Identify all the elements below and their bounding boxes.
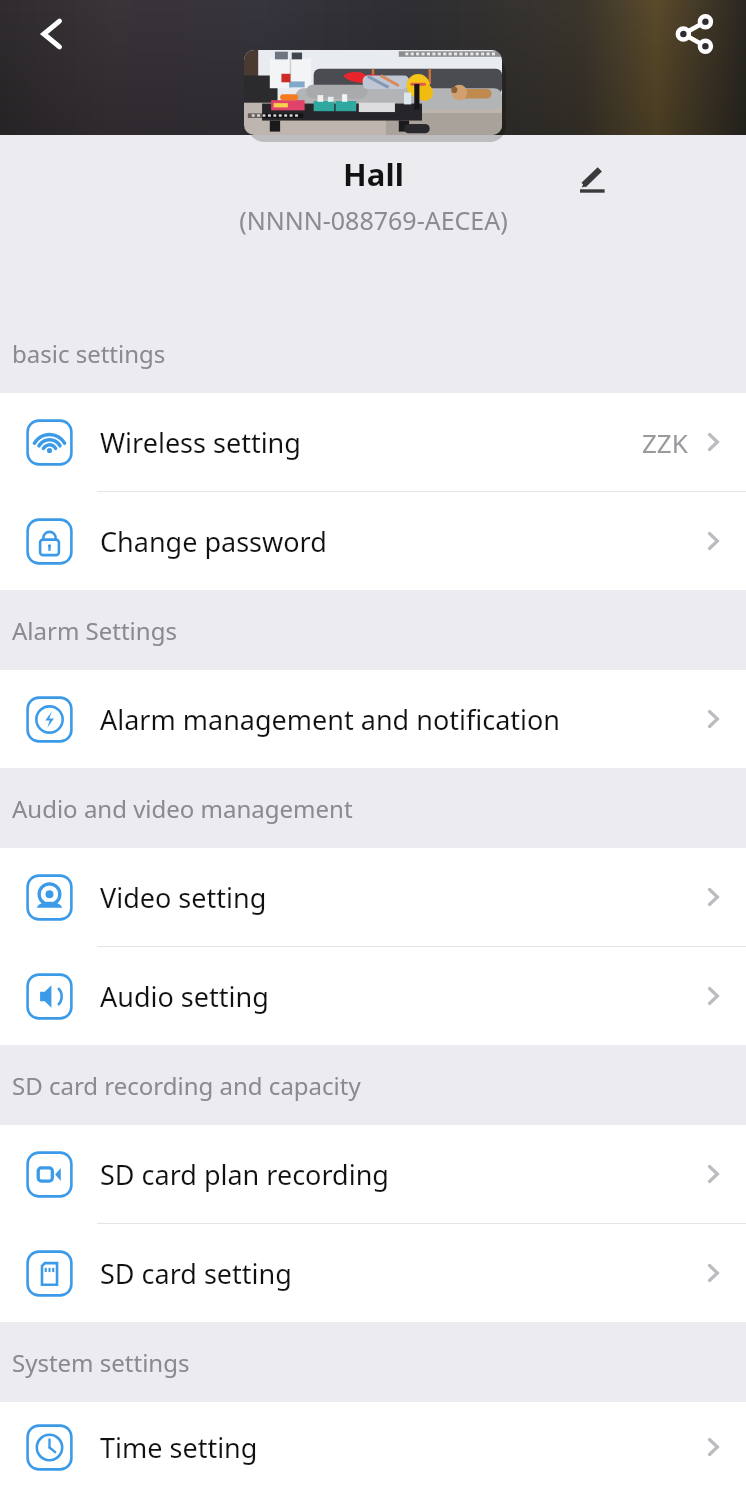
button[interactable]: Edit name — [566, 153, 618, 205]
staticText: SD card recording and capacity — [12, 1069, 361, 1102]
staticText: basic settings — [12, 337, 166, 370]
staticText: (NNNN-088769-AECEA) — [239, 203, 508, 237]
staticText: SD card plan recording — [100, 1156, 389, 1193]
button[interactable]: Time setting — [0, 1402, 746, 1492]
button[interactable]: Alarm management and notification — [0, 670, 746, 768]
staticText: Alarm management and notification — [100, 701, 561, 738]
button[interactable]: Share — [660, 0, 728, 68]
staticText: Change password — [100, 523, 327, 560]
staticText: ZZK — [642, 425, 688, 460]
button[interactable]: Audio setting — [0, 947, 746, 1045]
button[interactable]: Back — [18, 0, 86, 68]
staticText: Hall — [343, 153, 404, 195]
staticText: Audio setting — [100, 978, 269, 1015]
staticText: System settings — [12, 1346, 190, 1379]
staticText: Time setting — [100, 1429, 258, 1466]
staticText: SD card setting — [100, 1255, 292, 1292]
button[interactable]: Video setting — [0, 848, 746, 947]
staticText: Wireless setting — [100, 424, 301, 461]
button[interactable]: SD card setting — [0, 1224, 746, 1322]
button[interactable]: Wireless setting — [0, 393, 746, 492]
staticText: Audio and video management — [12, 792, 353, 825]
staticText: Video setting — [100, 879, 267, 916]
staticText: Alarm Settings — [12, 614, 177, 647]
button[interactable]: SD card plan recording — [0, 1125, 746, 1224]
button[interactable]: Change password — [0, 492, 746, 590]
button[interactable]: Camera snapshot — [244, 50, 502, 135]
